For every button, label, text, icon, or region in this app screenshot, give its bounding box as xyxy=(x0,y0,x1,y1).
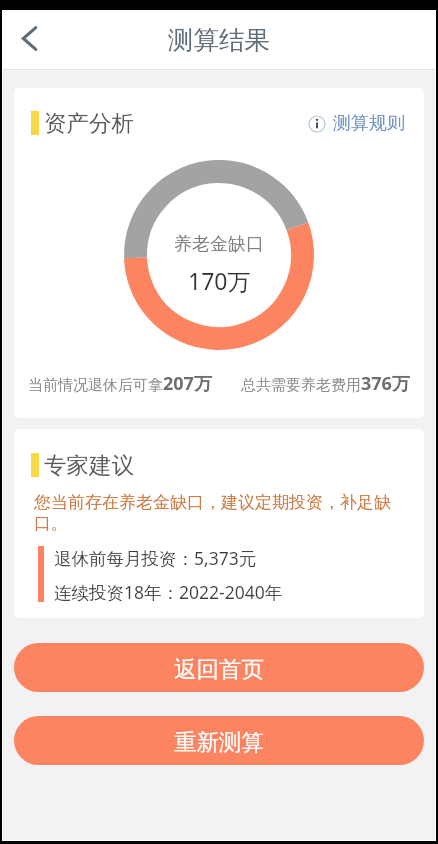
staticText: 资产分析 xyxy=(44,109,134,137)
button[interactable]: Back xyxy=(3,13,57,67)
staticText: 总共需要养老费用376万 xyxy=(241,371,410,396)
staticText: 返回首页 xyxy=(174,655,264,683)
staticText: 测算结果 xyxy=(168,24,270,56)
staticText: 退休前每月投资：5,373元 xyxy=(54,546,257,570)
staticText: 您当前存在养老金缺口，建议定期投资，补足缺口。 xyxy=(34,492,392,534)
staticText: 养老金缺口 xyxy=(174,233,264,256)
staticText: 连续投资18年：2022-2040年 xyxy=(54,580,283,602)
button[interactable]: 测算规则 xyxy=(308,112,405,135)
staticText: 当前情况退休后可拿207万 xyxy=(28,371,212,396)
button[interactable]: 返回首页 xyxy=(14,643,424,692)
staticText: 170万 xyxy=(188,265,251,296)
staticText: 测算规则 xyxy=(333,112,405,135)
staticText: 专家建议 xyxy=(44,451,134,479)
staticText: 重新测算 xyxy=(174,728,264,756)
button[interactable]: 重新测算 xyxy=(14,716,424,765)
